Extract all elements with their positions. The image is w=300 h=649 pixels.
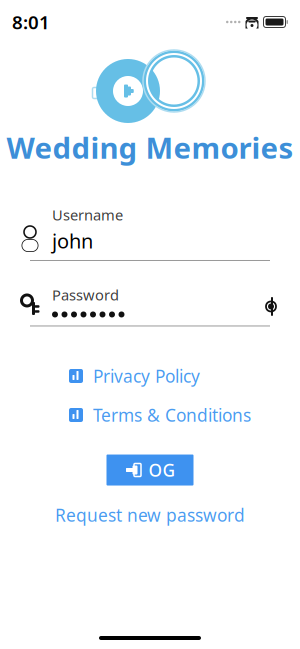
staticText: john	[52, 227, 93, 254]
button[interactable]: Terms & Conditions	[69, 403, 251, 426]
button[interactable]: Show password	[258, 293, 284, 319]
staticText: Password	[52, 285, 119, 304]
staticText: Username	[52, 205, 123, 224]
staticText: LOG IN	[148, 435, 175, 505]
staticText: Terms & Conditions	[93, 403, 251, 426]
button[interactable]: LOG IN	[106, 454, 193, 485]
staticText: Request new password	[55, 503, 245, 526]
staticText: 8:01	[12, 10, 50, 34]
button[interactable]: Request new password	[55, 503, 245, 526]
staticText: Privacy Policy	[93, 364, 200, 387]
staticText: Wedding Memories	[6, 128, 293, 167]
button[interactable]: Privacy Policy	[69, 364, 200, 387]
